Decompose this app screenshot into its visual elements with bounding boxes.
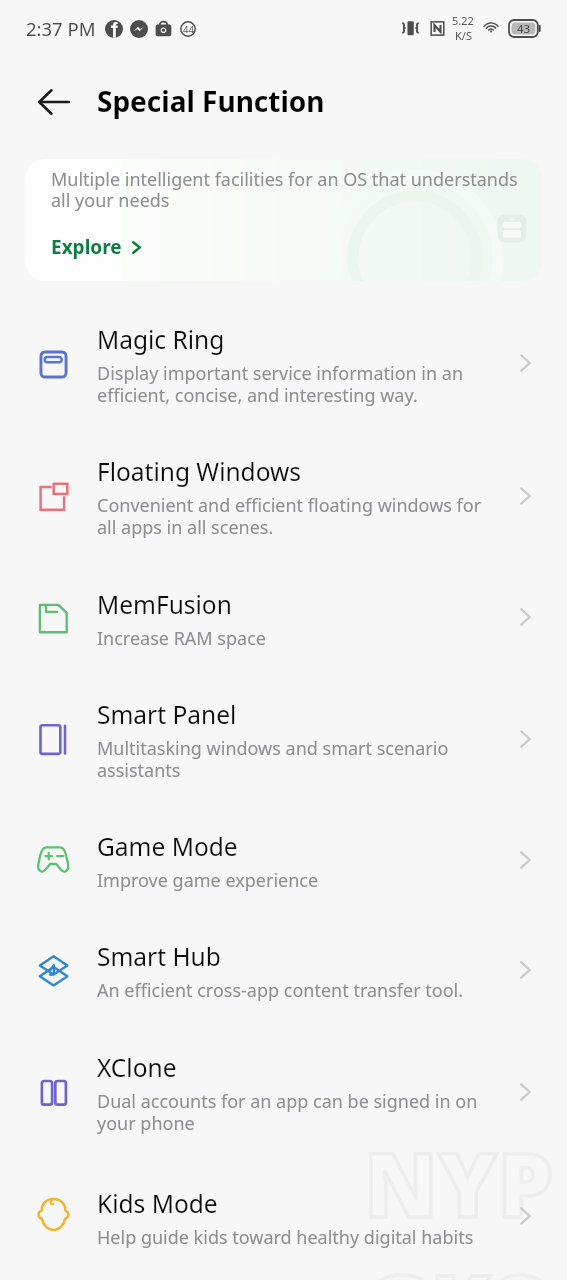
button[interactable]: Game Mode (0, 808, 567, 917)
staticText: Help guide kids toward healthy digital h… (97, 1226, 474, 1248)
button[interactable]: Floating Windows (0, 432, 567, 565)
staticText: Multitasking windows and smart scenario … (97, 737, 449, 781)
staticText: GKS (364, 1245, 567, 1280)
staticText: Improve game experience (97, 869, 319, 891)
staticText: K/S (455, 28, 472, 43)
staticText: Smart Panel (97, 702, 237, 730)
button[interactable]: XClone (0, 1028, 567, 1161)
staticText: Smart Hub (97, 944, 221, 972)
button[interactable]: Kids Mode (0, 1161, 567, 1277)
button[interactable]: Multiple intelligent facilities for an O… (25, 159, 542, 281)
staticText: Convenient and efficient floating window… (97, 494, 482, 538)
button[interactable]: Back (30, 78, 78, 126)
button[interactable]: Smart Panel (0, 675, 567, 808)
staticText: Explore (51, 234, 122, 260)
staticText: Magic Ring (97, 327, 225, 355)
staticText: An efficient cross-app content transfer … (97, 979, 464, 1001)
staticText: Game Mode (97, 834, 238, 862)
staticText: Display important service information in… (97, 362, 464, 406)
staticText: Floating Windows (97, 459, 301, 487)
button[interactable]: Smart Hub (0, 917, 567, 1028)
staticText: XClone (97, 1055, 177, 1083)
staticText: Multiple intelligent facilities for an O… (51, 167, 518, 213)
staticText: 5.22 (452, 13, 474, 28)
staticText: 43 (509, 20, 538, 37)
staticText: Increase RAM space (97, 627, 266, 649)
button[interactable]: MemFusion (0, 565, 567, 675)
staticText: Kids Mode (97, 1191, 218, 1219)
staticText: Special Function (97, 86, 325, 119)
staticText: 2:37 PM (26, 16, 96, 41)
staticText: 44 (183, 23, 194, 36)
button[interactable]: Magic Ring (0, 300, 567, 432)
staticText: Dual accounts for an app can be signed i… (97, 1090, 478, 1134)
staticText: MemFusion (97, 592, 232, 620)
staticText: NYP (364, 1123, 567, 1243)
